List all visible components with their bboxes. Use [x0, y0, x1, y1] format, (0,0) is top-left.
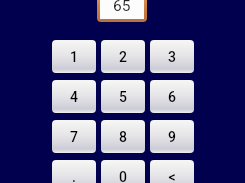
staticText: 2 [119, 49, 127, 65]
button[interactable]: 65 [100, 0, 144, 19]
button[interactable]: . [52, 160, 96, 183]
button[interactable]: 4 [52, 80, 96, 113]
button[interactable]: 0 [101, 160, 145, 183]
staticText: 8 [119, 129, 127, 145]
button[interactable]: 5 [101, 80, 145, 113]
staticText: 4 [70, 89, 78, 105]
button[interactable]: 2 [101, 40, 145, 73]
staticText: 3 [168, 49, 176, 65]
staticText: 5 [119, 89, 127, 105]
staticText: < [168, 169, 176, 183]
staticText: . [72, 169, 76, 183]
staticText: 9 [168, 129, 176, 145]
staticText: 65 [113, 0, 131, 15]
staticText: 1 [70, 49, 78, 65]
staticText: 0 [119, 169, 127, 183]
button[interactable]: 3 [150, 40, 194, 73]
button[interactable]: 1 [52, 40, 96, 73]
staticText: 7 [70, 129, 78, 145]
staticText: 6 [168, 89, 176, 105]
button[interactable]: 9 [150, 120, 194, 153]
button[interactable]: 8 [101, 120, 145, 153]
button[interactable]: 7 [52, 120, 96, 153]
button[interactable]: < [150, 160, 194, 183]
button[interactable]: 6 [150, 80, 194, 113]
